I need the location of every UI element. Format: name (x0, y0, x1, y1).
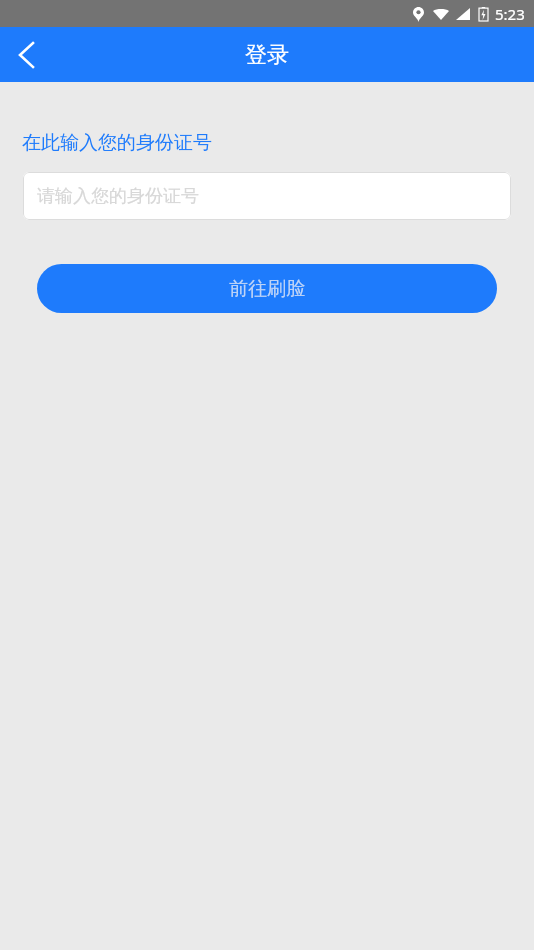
button[interactable]: 返回 (0, 29, 52, 81)
staticText: 在此输入您的身份证号 (22, 131, 212, 155)
staticText: 登录 (245, 41, 289, 69)
button[interactable]: 前往刷脸 (37, 264, 497, 313)
staticText: 5:23 (495, 4, 525, 24)
staticText: 请输入您的身份证号 (37, 185, 199, 208)
button[interactable]: 请输入您的身份证号 (23, 172, 511, 220)
staticText: 前往刷脸 (229, 277, 305, 301)
